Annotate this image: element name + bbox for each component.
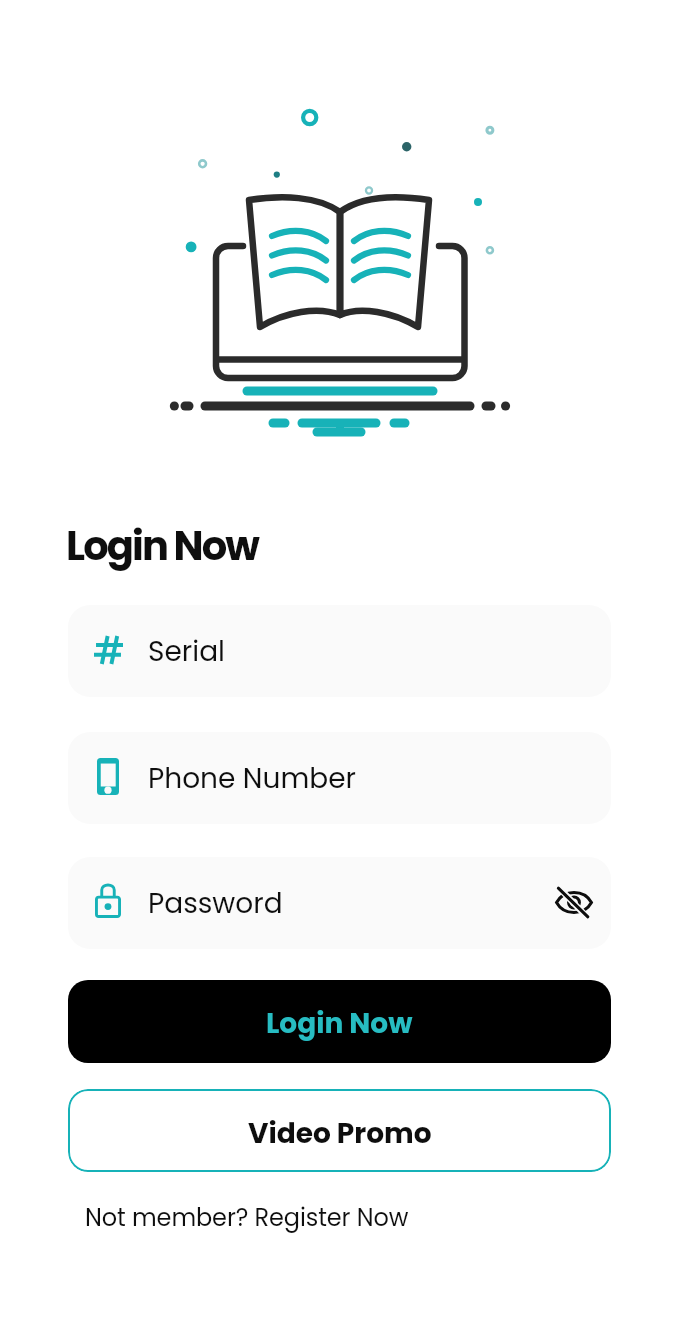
button[interactable]: Password	[68, 857, 611, 949]
staticText: Login Now	[66, 518, 259, 574]
button[interactable]: Phone Number	[68, 732, 611, 824]
staticText: Not member? Register Now	[85, 1201, 409, 1235]
staticText: Password	[148, 884, 283, 923]
button[interactable]: Login Now	[68, 980, 611, 1063]
staticText: Video Promo	[248, 1114, 432, 1153]
staticText: Login Now	[266, 1004, 413, 1043]
button[interactable]: Video Promo	[68, 1089, 611, 1172]
staticText: Serial	[148, 632, 225, 671]
button[interactable]: Show password	[551, 857, 595, 949]
button[interactable]: Not member? Register Now	[85, 1201, 409, 1235]
button[interactable]: Serial	[68, 605, 611, 697]
staticText: Phone Number	[148, 759, 356, 798]
